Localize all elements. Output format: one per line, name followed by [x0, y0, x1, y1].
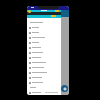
button[interactable]: [27, 40, 61, 45]
button[interactable]: [27, 70, 61, 75]
button[interactable]: [27, 85, 61, 90]
button[interactable]: [27, 25, 61, 30]
button[interactable]: [27, 30, 61, 35]
button[interactable]: [27, 75, 61, 80]
button[interactable]: [27, 35, 61, 40]
button[interactable]: [27, 65, 61, 70]
button[interactable]: [27, 80, 61, 85]
button[interactable]: [27, 20, 61, 25]
button[interactable]: [27, 90, 61, 95]
button[interactable]: Add: [61, 85, 68, 92]
button[interactable]: [27, 50, 61, 55]
button[interactable]: [27, 45, 61, 50]
button[interactable]: [27, 55, 61, 60]
button[interactable]: [27, 60, 61, 65]
